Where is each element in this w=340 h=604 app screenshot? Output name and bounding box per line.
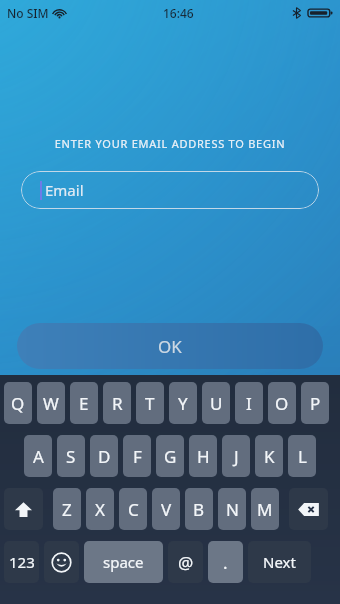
button[interactable]: J (222, 435, 250, 477)
staticText: . (223, 551, 228, 574)
staticText: R (112, 392, 123, 415)
staticText: F (133, 445, 142, 468)
button[interactable]: K (255, 435, 283, 477)
button[interactable]: U (202, 382, 230, 424)
staticText: M (257, 498, 273, 521)
staticText: space (103, 552, 144, 572)
staticText: N (226, 498, 239, 521)
staticText: Z (62, 498, 72, 521)
button[interactable]: M (251, 488, 279, 530)
button[interactable]: Z (53, 488, 81, 530)
staticText: ENTER YOUR EMAIL ADDRESS TO BEGIN (0, 136, 340, 151)
button[interactable]: S (57, 435, 85, 477)
staticText: Email (45, 180, 84, 200)
staticText: S (66, 445, 76, 468)
staticText: Q (11, 392, 25, 415)
staticText: T (145, 392, 155, 415)
staticText: B (193, 498, 205, 521)
staticText: 16:46 (163, 5, 194, 21)
staticText: I (246, 392, 252, 415)
staticText: V (161, 498, 172, 521)
button[interactable]: B (185, 488, 213, 530)
staticText: 123 (9, 552, 35, 572)
button[interactable]: C (119, 488, 147, 530)
staticText: K (264, 445, 275, 468)
staticText: O (275, 392, 289, 415)
button[interactable]: P (301, 382, 329, 424)
button[interactable]: Y (169, 382, 197, 424)
button[interactable]: V (152, 488, 180, 530)
staticText: L (298, 445, 307, 468)
staticText: A (33, 445, 44, 468)
staticText: X (95, 498, 105, 521)
button[interactable]: Backspace (289, 488, 328, 530)
button[interactable]: Q (4, 382, 32, 424)
staticText: C (128, 498, 139, 521)
button[interactable]: T (136, 382, 164, 424)
button[interactable]: F (123, 435, 151, 477)
staticText: @ (178, 551, 194, 574)
staticText: P (310, 392, 321, 415)
button[interactable]: G (156, 435, 184, 477)
button[interactable]: 123 (4, 541, 39, 583)
button[interactable]: Email (21, 171, 319, 209)
button[interactable]: E (70, 382, 98, 424)
staticText: No SIM (7, 5, 49, 21)
button[interactable]: Emoji (44, 541, 79, 583)
button[interactable]: . (208, 541, 243, 583)
staticText: J (234, 445, 239, 468)
button[interactable]: D (90, 435, 118, 477)
staticText: U (210, 392, 223, 415)
button[interactable]: L (288, 435, 316, 477)
staticText: Y (178, 392, 188, 415)
button[interactable]: OK (17, 323, 323, 369)
button[interactable]: N (218, 488, 246, 530)
staticText: OK (158, 335, 182, 358)
button[interactable]: H (189, 435, 217, 477)
button[interactable]: R (103, 382, 131, 424)
staticText: W (43, 392, 59, 415)
button[interactable]: W (37, 382, 65, 424)
button[interactable]: A (24, 435, 52, 477)
staticText: Next (263, 552, 296, 572)
staticText: E (79, 392, 89, 415)
button[interactable]: I (235, 382, 263, 424)
button[interactable]: Shift (4, 488, 43, 530)
staticText: D (98, 445, 111, 468)
button[interactable]: O (268, 382, 296, 424)
button[interactable]: @ (168, 541, 203, 583)
button[interactable]: X (86, 488, 114, 530)
staticText: G (164, 445, 177, 468)
button[interactable]: Next (248, 541, 311, 583)
button[interactable]: space (84, 541, 163, 583)
staticText: H (197, 445, 210, 468)
